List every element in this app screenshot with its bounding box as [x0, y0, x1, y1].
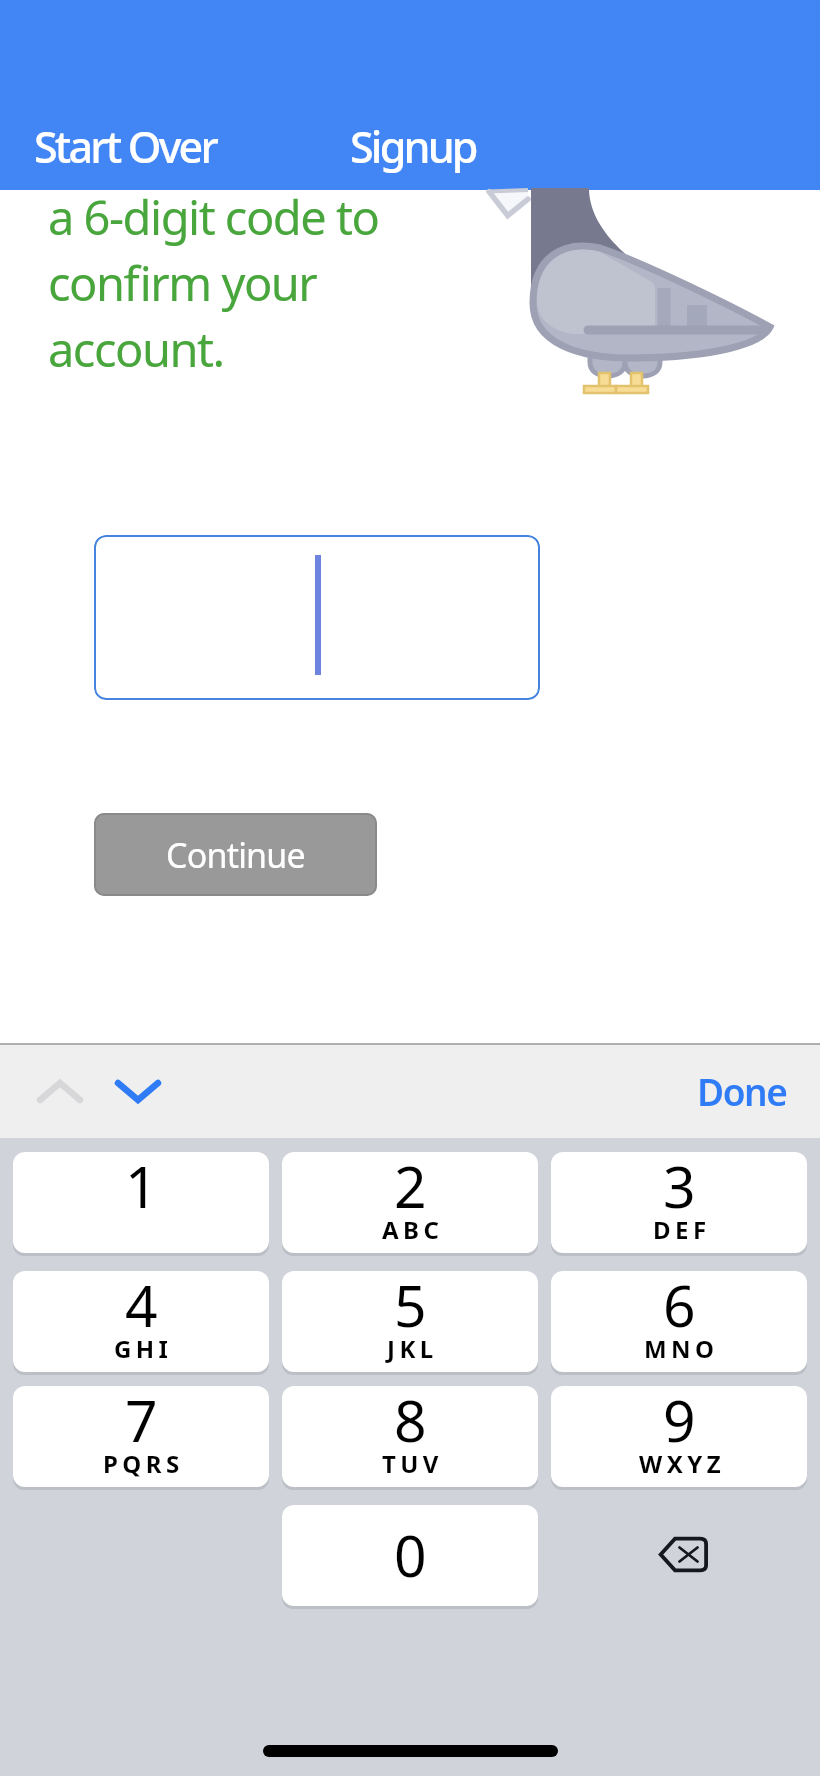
staticText: 6: [663, 1271, 696, 1344]
button[interactable]: Previous field: [6, 1049, 112, 1133]
button[interactable]: 9: [551, 1386, 807, 1487]
staticText: 2: [394, 1152, 427, 1225]
button[interactable]: 1: [13, 1152, 269, 1253]
staticText: T U V: [382, 1447, 438, 1480]
button[interactable]: 8: [282, 1386, 538, 1487]
staticText: Continue: [166, 832, 305, 878]
button[interactable]: 7: [13, 1386, 269, 1487]
staticText: 5: [394, 1271, 427, 1344]
staticText: W X Y Z: [639, 1447, 720, 1480]
button[interactable]: 2: [282, 1152, 538, 1253]
button[interactable]: Continue: [94, 813, 377, 896]
button[interactable]: Next field: [112, 1049, 218, 1133]
staticText: 3: [663, 1152, 696, 1225]
button[interactable]: Signup: [350, 117, 476, 176]
staticText: Done: [697, 1066, 787, 1116]
staticText: 0: [394, 1516, 427, 1594]
staticText: 1: [125, 1152, 158, 1225]
staticText: 9: [663, 1386, 696, 1459]
staticText: J K L: [387, 1332, 433, 1365]
button[interactable]: 5: [282, 1271, 538, 1372]
staticText: 7: [125, 1386, 158, 1459]
staticText: a 6-digit code to confirm your account.: [48, 185, 379, 381]
button[interactable]: Done: [667, 1048, 820, 1134]
staticText: A B C: [382, 1213, 438, 1246]
staticText: 8: [394, 1386, 427, 1459]
staticText: 4: [125, 1271, 158, 1344]
button[interactable]: Delete: [551, 1505, 807, 1606]
button[interactable]: 4: [13, 1271, 269, 1372]
staticText: M N O: [644, 1332, 714, 1365]
button[interactable]: 0: [282, 1505, 538, 1606]
button[interactable]: 6: [551, 1271, 807, 1372]
button[interactable]: [94, 535, 540, 700]
staticText: P Q R S: [103, 1447, 179, 1480]
button[interactable]: Start Over: [34, 117, 216, 176]
staticText: D E F: [653, 1213, 706, 1246]
staticText: Start Over: [34, 117, 216, 176]
staticText: G H I: [114, 1332, 168, 1365]
staticText: Signup: [350, 117, 476, 176]
button[interactable]: 3: [551, 1152, 807, 1253]
